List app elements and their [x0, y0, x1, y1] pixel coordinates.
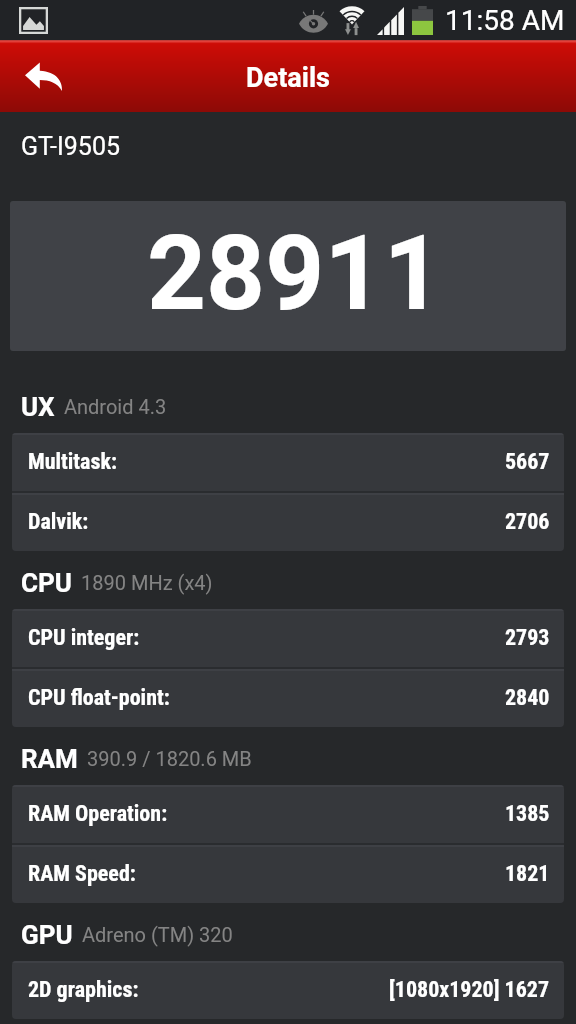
button[interactable]: RAM Speed:	[12, 845, 564, 903]
button[interactable]: 2D graphics:	[12, 961, 564, 1019]
staticText: Dalvik:	[28, 509, 89, 535]
staticText: CPU float-point:	[28, 685, 170, 711]
staticText: RAM Operation:	[28, 801, 168, 827]
button[interactable]: CPU float-point:	[12, 669, 564, 727]
button[interactable]: Multitask:	[12, 433, 564, 491]
staticText: 2706	[505, 509, 550, 535]
staticText: UX	[21, 392, 55, 422]
staticText: GT-I9505	[21, 132, 121, 161]
staticText: RAM	[21, 744, 78, 774]
staticText: [1080x1920] 1627	[389, 977, 550, 1003]
staticText: RAM Speed:	[28, 861, 136, 887]
staticText: Adreno (TM) 320	[82, 923, 233, 946]
staticText: 1890 MHz (x4)	[81, 571, 213, 594]
button[interactable]: Dalvik:	[12, 493, 564, 551]
staticText: CPU integer:	[28, 625, 140, 651]
staticText: 390.9 / 1820.6 MB	[87, 747, 252, 770]
staticText: 2D graphics:	[28, 977, 139, 1003]
staticText: 11:58 AM	[445, 4, 565, 37]
button[interactable]: RAM Operation:	[12, 785, 564, 843]
staticText: 1385	[505, 801, 550, 827]
button[interactable]: 28911	[10, 201, 566, 351]
staticText: 28911	[147, 213, 443, 334]
staticText: GPU	[21, 920, 73, 950]
staticText: Multitask:	[28, 449, 117, 475]
staticText: Details	[246, 62, 330, 94]
button[interactable]: Back	[12, 40, 74, 112]
button[interactable]: CPU integer:	[12, 609, 564, 667]
staticText: 2793	[505, 625, 550, 651]
staticText: 5667	[505, 449, 550, 475]
staticText: 1821	[505, 861, 550, 887]
staticText: CPU	[21, 568, 72, 598]
staticText: Android 4.3	[64, 395, 167, 418]
staticText: 2840	[505, 685, 550, 711]
